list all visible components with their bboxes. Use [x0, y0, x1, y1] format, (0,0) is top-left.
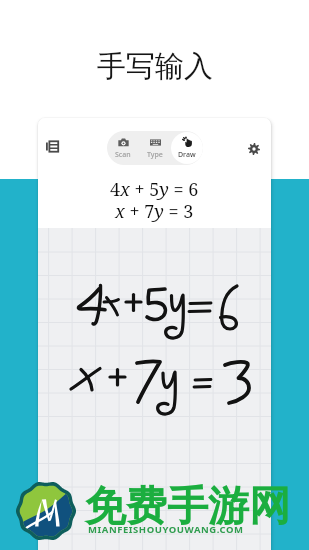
button[interactable]: Scan [107, 132, 139, 164]
staticText: x + 7y = 3 [115, 199, 194, 224]
button[interactable]: Type [139, 132, 171, 164]
button[interactable]: Draw [171, 132, 203, 164]
button[interactable]: Settings [239, 134, 268, 163]
staticText: Draw [178, 150, 196, 160]
staticText: 4x + 5y = 6 [110, 177, 199, 202]
staticText: MIANFEISHOUYOUWANG.COM [88, 523, 244, 536]
staticText: 免费手游网 [85, 481, 290, 533]
staticText: Scan [115, 150, 131, 160]
staticText: Type [147, 150, 163, 160]
staticText: 手写输入 [97, 48, 213, 85]
button[interactable]: History [38, 132, 67, 161]
